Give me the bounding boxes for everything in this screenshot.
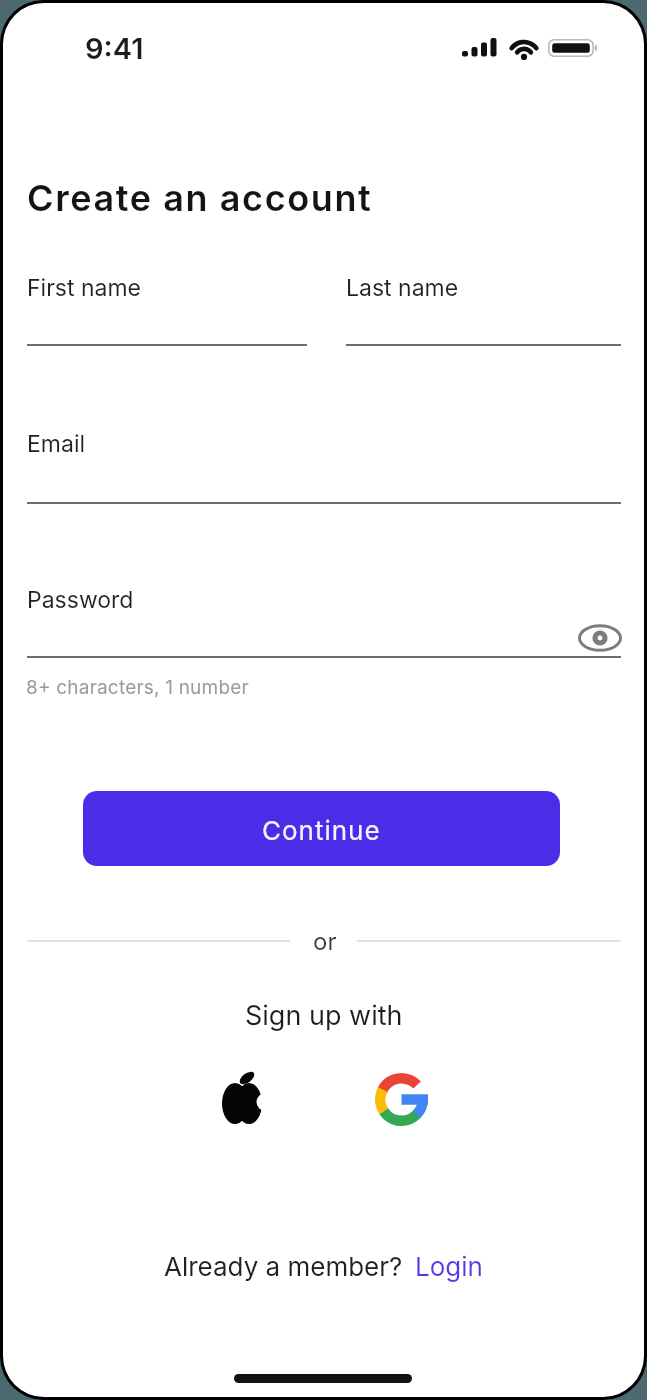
staticText: 9:41 [85,31,144,66]
button[interactable]: Continue [83,791,560,866]
staticText: First name [27,274,142,302]
button[interactable] [578,623,622,653]
staticText: Password [27,586,134,614]
staticText: Continue [262,815,381,846]
button[interactable]: Login [415,1251,483,1282]
staticText: Already a member? [164,1251,403,1282]
staticText: Email [27,430,86,458]
staticText: Create an account [27,176,373,220]
staticText: Last name [346,274,459,302]
staticText: Sign up with [245,999,403,1032]
staticText: 8+ characters, 1 number [26,676,249,699]
button[interactable] [221,1070,266,1127]
staticText: or [313,927,337,956]
button[interactable] [375,1073,428,1126]
